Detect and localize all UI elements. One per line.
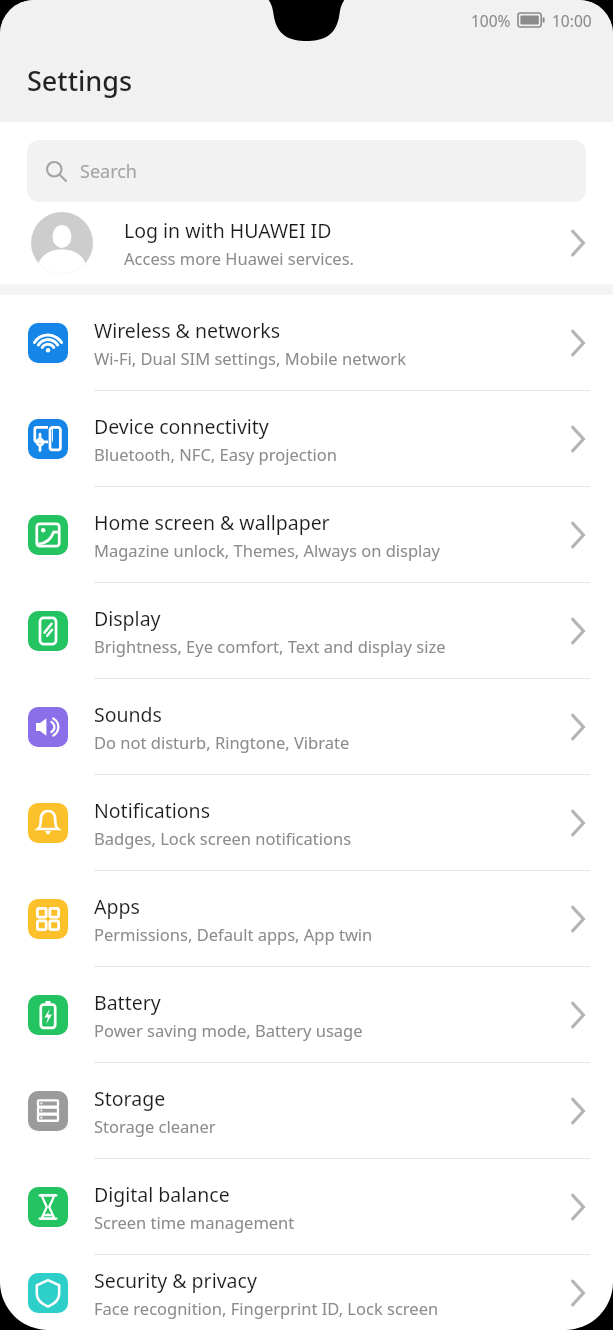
staticText: Display bbox=[94, 605, 161, 632]
button[interactable]: Display bbox=[0, 583, 613, 679]
staticText: Storage bbox=[94, 1085, 166, 1112]
staticText: Search bbox=[80, 159, 137, 184]
staticText: Do not disturb, Ringtone, Vibrate bbox=[94, 731, 350, 753]
other: Open bbox=[569, 518, 589, 552]
button[interactable]: Log in with HUAWEI ID bbox=[0, 202, 613, 284]
staticText: Sounds bbox=[94, 701, 162, 728]
button[interactable]: Apps bbox=[0, 871, 613, 967]
button[interactable]: Wireless & networks bbox=[0, 295, 613, 391]
staticText: Badges, Lock screen notifications bbox=[94, 827, 352, 849]
other: Open bbox=[569, 902, 589, 936]
staticText: Magazine unlock, Themes, Always on displ… bbox=[94, 539, 441, 561]
other: Open bbox=[569, 422, 589, 456]
button[interactable]: Security & privacy bbox=[0, 1255, 613, 1330]
other: Open bbox=[569, 998, 589, 1032]
button[interactable]: Search bbox=[27, 140, 586, 202]
other: Open bbox=[569, 1190, 589, 1224]
button[interactable]: Home screen & wallpaper bbox=[0, 487, 613, 583]
staticText: 100% bbox=[471, 10, 511, 31]
staticText: Device connectivity bbox=[94, 413, 269, 440]
staticText: Notifications bbox=[94, 797, 210, 824]
staticText: Wireless & networks bbox=[94, 317, 280, 344]
staticText: Home screen & wallpaper bbox=[94, 509, 330, 536]
other: Open bbox=[569, 226, 589, 260]
staticText: Security & privacy bbox=[94, 1267, 257, 1294]
button[interactable]: Storage bbox=[0, 1063, 613, 1159]
button[interactable]: Sounds bbox=[0, 679, 613, 775]
staticText: Permissions, Default apps, App twin bbox=[94, 923, 373, 945]
staticText: 10:00 bbox=[552, 10, 592, 31]
other: Open bbox=[569, 1276, 589, 1310]
staticText: Wi-Fi, Dual SIM settings, Mobile network bbox=[94, 347, 406, 369]
staticText: Screen time management bbox=[94, 1211, 295, 1233]
other: Open bbox=[569, 806, 589, 840]
other: Open bbox=[569, 1094, 589, 1128]
staticText: Battery bbox=[94, 989, 161, 1016]
other: Open bbox=[569, 326, 589, 360]
staticText: Apps bbox=[94, 893, 140, 920]
staticText: Power saving mode, Battery usage bbox=[94, 1019, 363, 1041]
button[interactable]: Notifications bbox=[0, 775, 613, 871]
button[interactable]: Digital balance bbox=[0, 1159, 613, 1255]
button[interactable]: Device connectivity bbox=[0, 391, 613, 487]
staticText: Access more Huawei services. bbox=[124, 247, 354, 269]
staticText: Brightness, Eye comfort, Text and displa… bbox=[94, 635, 446, 657]
staticText: Digital balance bbox=[94, 1181, 230, 1208]
staticText: Storage cleaner bbox=[94, 1115, 216, 1137]
staticText: Face recognition, Fingerprint ID, Lock s… bbox=[94, 1297, 439, 1319]
staticText: Settings bbox=[27, 62, 133, 99]
staticText: Bluetooth, NFC, Easy projection bbox=[94, 443, 338, 465]
other: Open bbox=[569, 614, 589, 648]
staticText: Log in with HUAWEI ID bbox=[124, 217, 332, 244]
button[interactable]: Battery bbox=[0, 967, 613, 1063]
other: Open bbox=[569, 710, 589, 744]
